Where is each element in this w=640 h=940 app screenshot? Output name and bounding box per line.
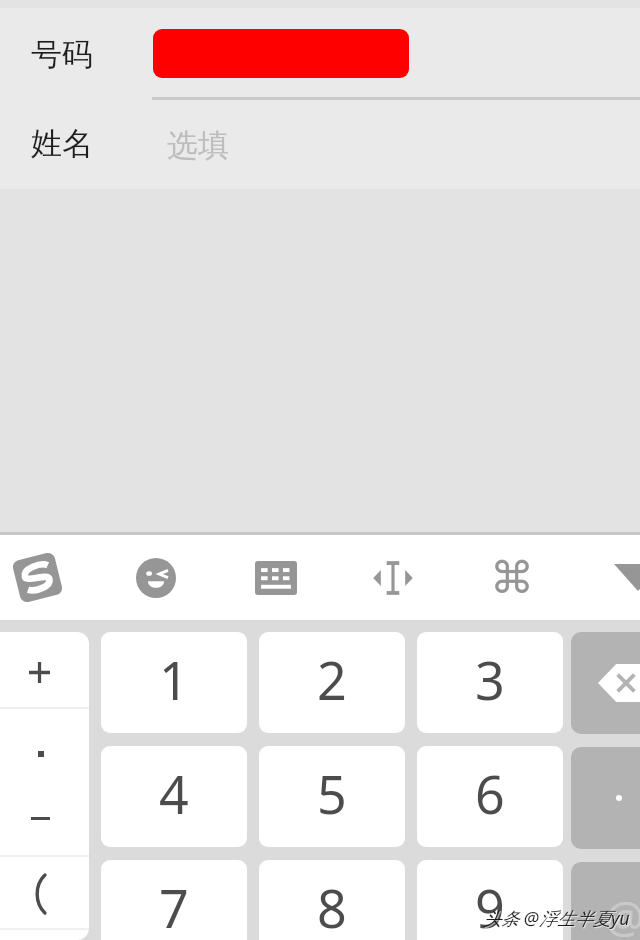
staticText: 选填 [167,126,229,165]
button[interactable]: Sogou input [0,535,74,620]
button[interactable]: Shortcuts [452,535,572,620]
button[interactable]: Hide keyboard [572,535,640,620]
button[interactable]: 7 [101,860,247,940]
staticText: 5 [317,758,347,829]
staticText: ⌘ [490,552,534,603]
button[interactable] [0,632,89,708]
button[interactable]: Backspace [571,632,640,734]
button[interactable]: 1 [101,632,247,733]
staticText: 3 [475,644,505,715]
staticText: @ [605,886,640,940]
staticText: 1 [159,644,189,715]
button[interactable] [153,29,409,78]
button[interactable] [0,709,89,855]
staticText: 号码 [31,35,93,74]
staticText: 6 [475,758,505,829]
button[interactable]: 2 [259,632,405,733]
button[interactable]: Move cursor [333,535,453,620]
staticText: 7 [159,872,189,940]
button[interactable]: At sign [571,862,640,940]
button[interactable]: 4 [101,746,247,847]
staticText: 4 [159,758,189,829]
staticText: 姓名 [31,124,93,163]
button[interactable]: 6 [417,746,563,847]
button[interactable]: Emoji [96,535,216,620]
button[interactable]: 5 [259,746,405,847]
staticText: 2 [317,644,347,715]
staticText: 9 [475,872,505,940]
button[interactable]: 9 [417,860,563,940]
staticText: 8 [317,872,347,940]
staticText: 头条 @浮生半夏yu [484,907,631,932]
button[interactable]: Period [571,747,640,849]
button[interactable]: 8 [259,860,405,940]
button[interactable]: 3 [417,632,563,733]
button[interactable] [0,857,89,940]
staticText: 头条 @浮生半夏yu [483,906,630,931]
button[interactable]: Keyboard layout [216,535,336,620]
